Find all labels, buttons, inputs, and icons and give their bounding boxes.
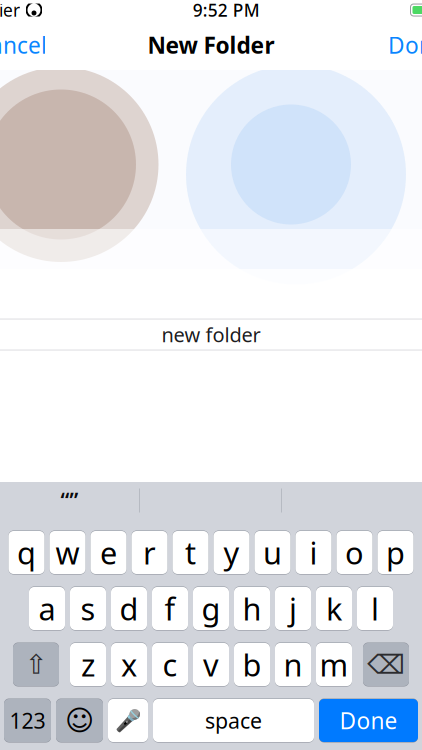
button[interactable]: e xyxy=(90,530,126,575)
staticText: k xyxy=(326,588,342,629)
staticText: j xyxy=(289,588,297,629)
staticText: 🎤 xyxy=(114,708,141,733)
staticText: y xyxy=(223,532,239,573)
staticText: Done xyxy=(339,705,397,735)
staticText: New Folder xyxy=(147,30,274,60)
staticText: b xyxy=(242,644,261,685)
staticText: space xyxy=(205,706,262,735)
button[interactable]: d xyxy=(111,586,147,631)
button[interactable]: i xyxy=(295,530,331,575)
button[interactable]: f xyxy=(152,586,188,631)
staticText: 🎤 xyxy=(114,708,141,733)
button[interactable]: Folder name xyxy=(0,319,422,350)
staticText: j xyxy=(289,588,297,629)
staticText: v xyxy=(203,644,219,685)
staticText: z xyxy=(81,644,95,685)
button[interactable]: s xyxy=(70,586,106,631)
button[interactable]: Done xyxy=(378,22,422,68)
staticText: h xyxy=(242,588,261,629)
staticText: g xyxy=(201,588,220,629)
staticText: l xyxy=(371,588,379,629)
button[interactable]: a xyxy=(29,586,65,631)
staticText: i xyxy=(309,532,317,573)
staticText: h xyxy=(242,588,261,629)
staticText: ☺ xyxy=(65,705,94,736)
button[interactable]: t xyxy=(172,530,208,575)
staticText: u xyxy=(263,532,282,573)
staticText: z xyxy=(81,644,95,685)
staticText: Carrier xyxy=(0,0,20,21)
staticText: x xyxy=(121,644,137,685)
staticText: ⇧ xyxy=(25,649,47,680)
button[interactable]: l xyxy=(357,586,393,631)
staticText: c xyxy=(162,644,177,685)
staticText: t xyxy=(185,532,196,573)
button[interactable]: Numbers xyxy=(4,698,51,743)
staticText: k xyxy=(326,588,342,629)
staticText: d xyxy=(119,588,138,629)
button[interactable]: Dictation xyxy=(108,698,148,743)
button[interactable]: w xyxy=(49,530,85,575)
staticText: d xyxy=(119,588,138,629)
staticText: n xyxy=(283,644,302,685)
button[interactable]: c xyxy=(152,642,188,687)
button[interactable]: m xyxy=(316,642,352,687)
staticText: i xyxy=(309,532,317,573)
staticText: t xyxy=(185,532,196,573)
button[interactable]: b xyxy=(234,642,270,687)
staticText: new folder xyxy=(161,321,260,348)
staticText: r xyxy=(143,532,156,573)
button[interactable]: Emoji xyxy=(56,698,103,743)
staticText: v xyxy=(203,644,219,685)
staticText: n xyxy=(283,644,302,685)
staticText: w xyxy=(55,532,79,573)
staticText: b xyxy=(242,644,261,685)
button[interactable]: x xyxy=(111,642,147,687)
staticText: l xyxy=(371,588,379,629)
button[interactable]: q xyxy=(8,530,44,575)
button[interactable]: Delete xyxy=(363,642,409,687)
staticText: 123 xyxy=(9,706,45,735)
staticText: y xyxy=(223,532,239,573)
button[interactable]: “” xyxy=(0,482,139,519)
button[interactable]: o xyxy=(336,530,372,575)
staticText: s xyxy=(80,588,95,629)
button[interactable]: Shift xyxy=(13,642,59,687)
staticText: c xyxy=(162,644,177,685)
staticText: Done xyxy=(339,705,397,735)
staticText: e xyxy=(100,532,117,573)
staticText: ⇧ xyxy=(25,649,47,680)
staticText: Done xyxy=(388,30,422,60)
staticText: ☺ xyxy=(65,705,94,736)
button[interactable]: v xyxy=(193,642,229,687)
button[interactable]: g xyxy=(193,586,229,631)
button[interactable]: y xyxy=(213,530,249,575)
staticText: o xyxy=(345,532,364,573)
staticText: w xyxy=(55,532,79,573)
staticText: ⌫ xyxy=(367,649,405,680)
staticText: f xyxy=(164,588,175,629)
button[interactable]: z xyxy=(70,642,106,687)
staticText: a xyxy=(38,588,55,629)
button[interactable]: space xyxy=(153,698,314,743)
button[interactable]: Cancel xyxy=(0,22,57,68)
button[interactable]: h xyxy=(234,586,270,631)
staticText: a xyxy=(38,588,55,629)
staticText: u xyxy=(263,532,282,573)
staticText: m xyxy=(319,644,348,685)
button[interactable]: n xyxy=(275,642,311,687)
staticText: 9:52 PM xyxy=(193,0,260,21)
staticText: p xyxy=(386,532,405,573)
staticText: e xyxy=(100,532,117,573)
button[interactable]: j xyxy=(275,586,311,631)
staticText: o xyxy=(345,532,364,573)
button[interactable]: Done xyxy=(319,698,418,743)
button[interactable]: r xyxy=(131,530,167,575)
staticText: g xyxy=(201,588,220,629)
staticText: Cancel xyxy=(0,30,47,60)
button[interactable]: p xyxy=(377,530,413,575)
button[interactable]: u xyxy=(254,530,290,575)
button[interactable]: k xyxy=(316,586,352,631)
